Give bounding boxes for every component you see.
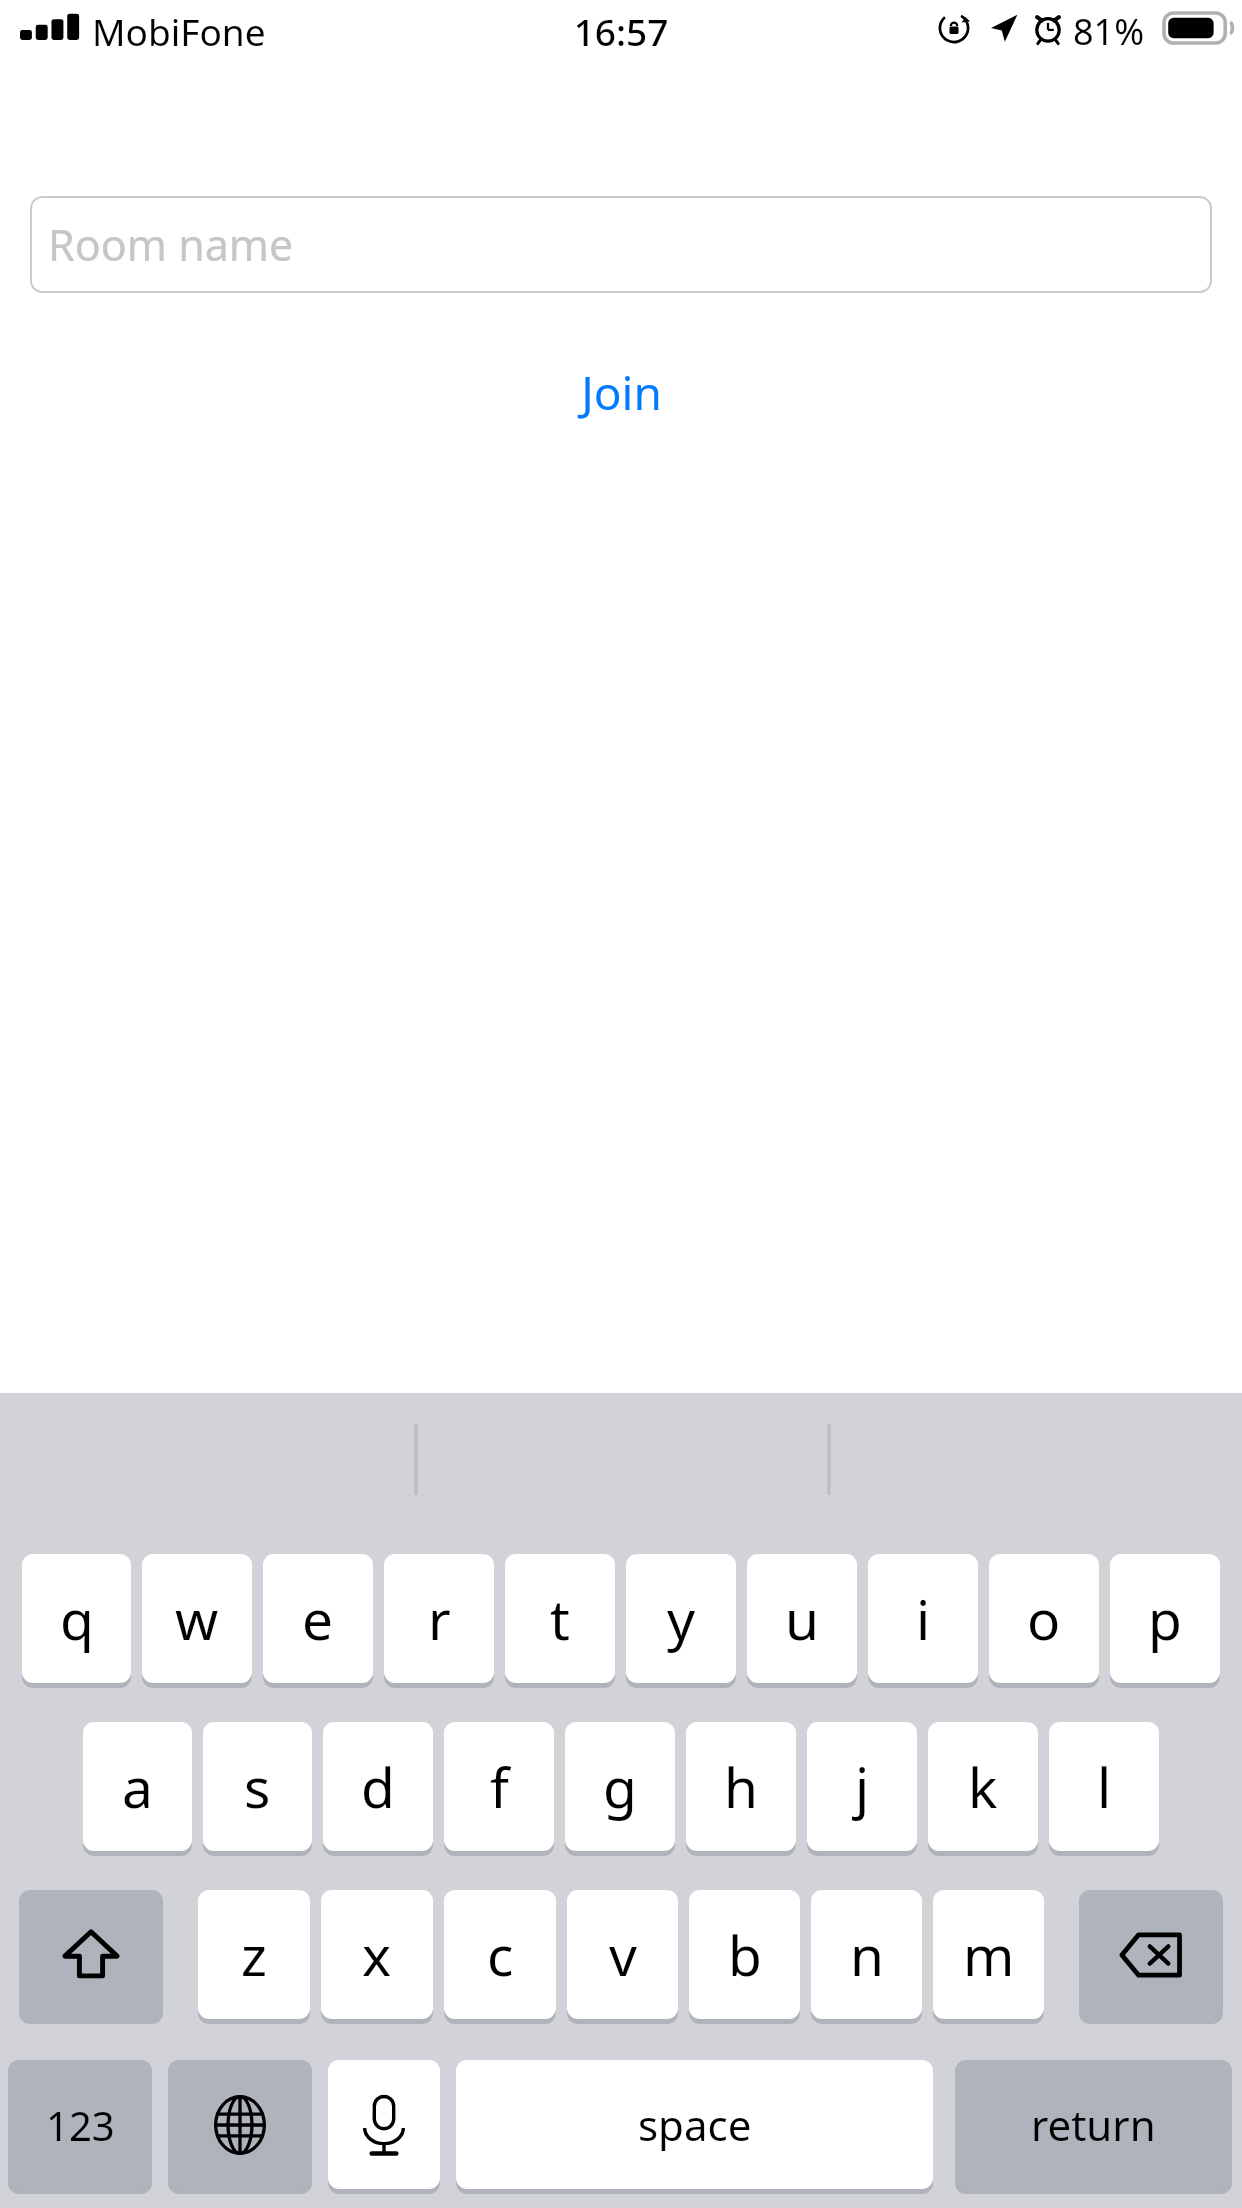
button[interactable]: Shift xyxy=(19,1890,163,2019)
button[interactable]: v xyxy=(567,1890,678,2019)
button[interactable]: c xyxy=(444,1890,556,2019)
staticText: 16:57 xyxy=(0,6,1242,56)
staticText: q xyxy=(60,1581,94,1656)
staticText: h xyxy=(724,1749,758,1824)
button[interactable]: return xyxy=(955,2060,1232,2189)
button[interactable]: f xyxy=(444,1722,554,1851)
staticText: x xyxy=(362,1917,392,1992)
staticText: return xyxy=(1031,2096,1156,2153)
staticText: a xyxy=(122,1749,153,1824)
staticText: t xyxy=(550,1581,570,1656)
button[interactable]: g xyxy=(565,1722,675,1851)
button[interactable]: e xyxy=(263,1554,373,1683)
staticText: Room name xyxy=(48,215,294,274)
button[interactable]: o xyxy=(989,1554,1099,1683)
staticText: e xyxy=(302,1581,334,1656)
staticText: b xyxy=(728,1917,762,1992)
staticText: u xyxy=(785,1581,819,1656)
staticText: v xyxy=(609,1917,637,1992)
button[interactable]: k xyxy=(928,1722,1038,1851)
staticText: j xyxy=(855,1749,870,1824)
button[interactable]: 123 xyxy=(8,2060,152,2189)
button[interactable]: i xyxy=(868,1554,978,1683)
button[interactable]: w xyxy=(142,1554,252,1683)
staticText: l xyxy=(1097,1749,1112,1824)
button[interactable]: m xyxy=(933,1890,1044,2019)
button[interactable]: x xyxy=(321,1890,433,2019)
staticText: z xyxy=(241,1917,267,1992)
staticText: d xyxy=(361,1749,395,1824)
staticText: n xyxy=(850,1917,884,1992)
button[interactable]: Next keyboard xyxy=(168,2060,312,2189)
button[interactable]: j xyxy=(807,1722,917,1851)
staticText: p xyxy=(1148,1581,1182,1656)
button[interactable]: y xyxy=(626,1554,736,1683)
staticText: MobiFone xyxy=(92,6,266,56)
button[interactable]: d xyxy=(323,1722,433,1851)
staticText: space xyxy=(638,2096,752,2153)
staticText: y xyxy=(667,1581,696,1656)
staticText: c xyxy=(487,1917,514,1992)
staticText: w xyxy=(175,1581,219,1656)
staticText: o xyxy=(1027,1581,1061,1656)
button[interactable]: Backspace xyxy=(1079,1890,1223,2019)
button[interactable]: Join xyxy=(0,352,1242,432)
button[interactable]: n xyxy=(811,1890,922,2019)
button[interactable]: Dictate xyxy=(328,2060,440,2189)
button[interactable]: a xyxy=(83,1722,192,1851)
staticText: s xyxy=(244,1749,271,1824)
button[interactable]: t xyxy=(505,1554,615,1683)
button[interactable]: h xyxy=(686,1722,796,1851)
button[interactable]: q xyxy=(22,1554,131,1683)
staticText: f xyxy=(490,1749,509,1824)
button[interactable]: Room name xyxy=(30,196,1212,293)
staticText: Join xyxy=(581,361,662,424)
button[interactable]: u xyxy=(747,1554,857,1683)
staticText: m xyxy=(963,1917,1015,1992)
staticText: g xyxy=(603,1749,637,1824)
button[interactable]: p xyxy=(1110,1554,1220,1683)
staticText: r xyxy=(428,1581,451,1656)
button[interactable]: b xyxy=(689,1890,800,2019)
staticText: i xyxy=(916,1581,931,1656)
button[interactable]: space xyxy=(456,2060,933,2189)
staticText: 81% xyxy=(1073,7,1145,56)
staticText: k xyxy=(968,1749,998,1824)
button[interactable]: l xyxy=(1049,1722,1159,1851)
button[interactable]: z xyxy=(198,1890,310,2019)
staticText: 123 xyxy=(46,2098,115,2152)
button[interactable]: s xyxy=(203,1722,312,1851)
button[interactable]: r xyxy=(384,1554,494,1683)
